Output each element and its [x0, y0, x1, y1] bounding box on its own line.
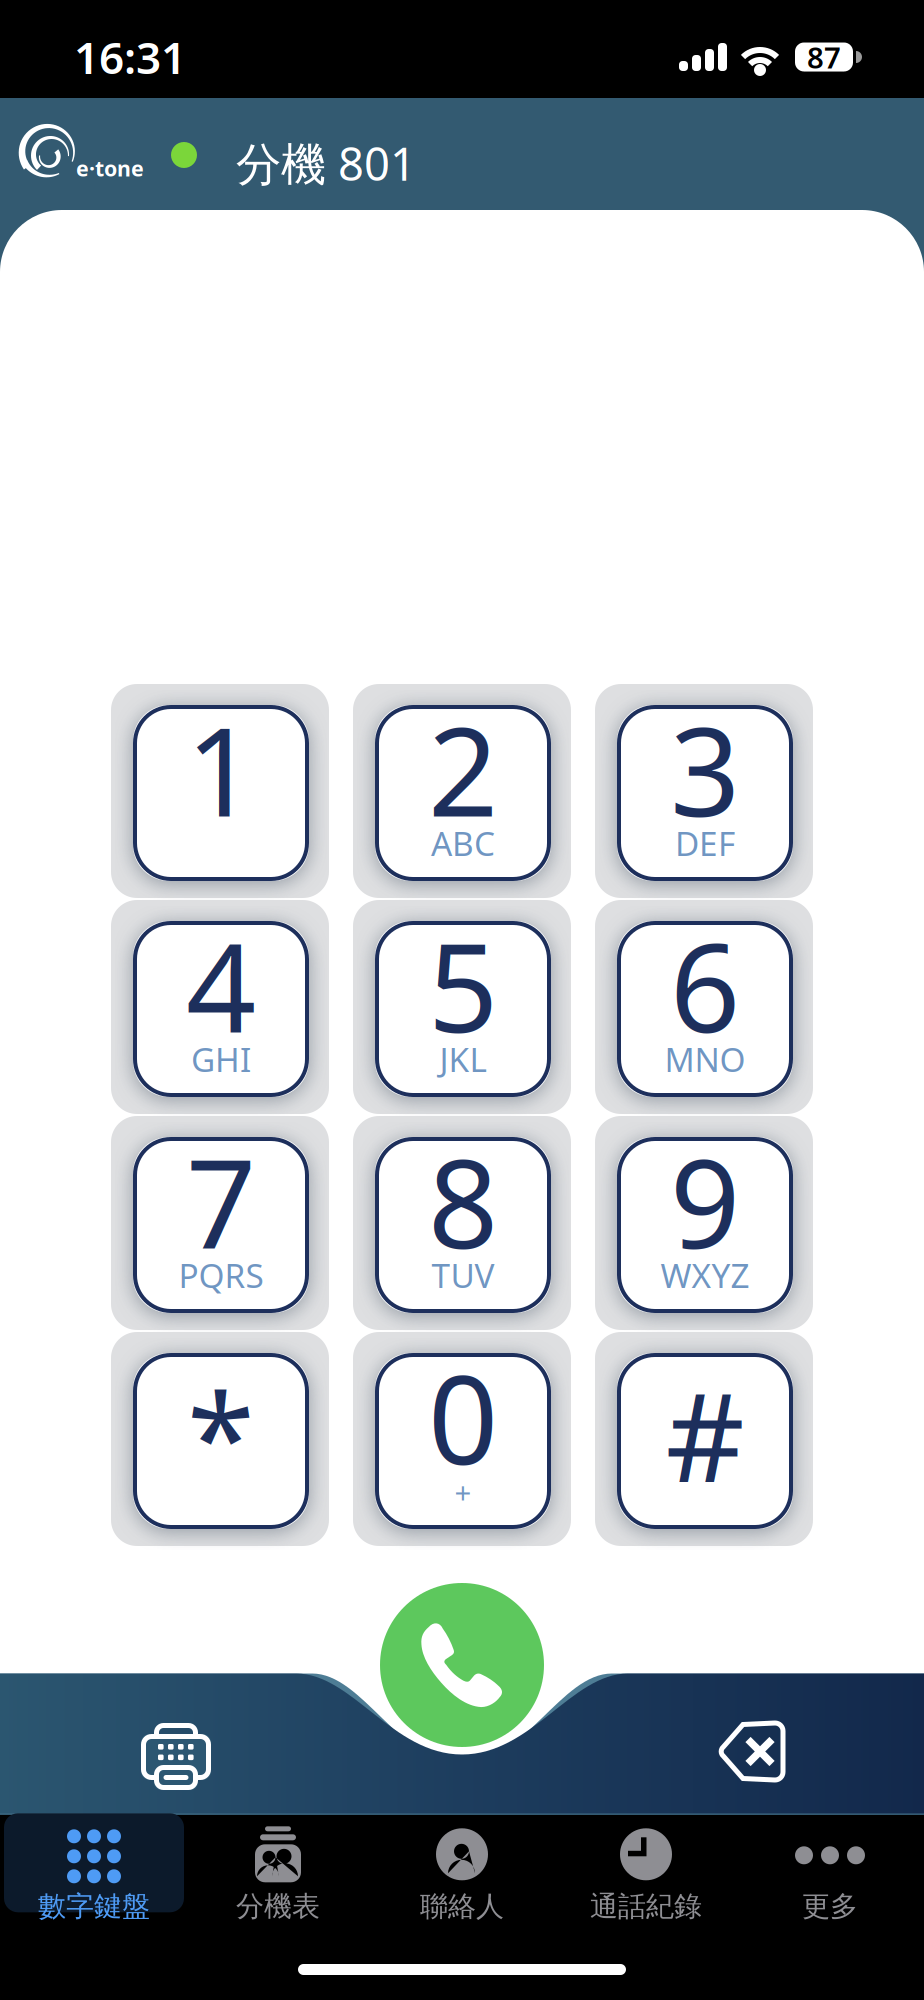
staticText: ABC [431, 821, 495, 865]
button[interactable]: 1 [111, 684, 329, 898]
staticText: MNO [664, 1037, 745, 1081]
staticText: JKL [439, 1037, 486, 1081]
staticText: + [454, 1472, 471, 1511]
button[interactable]: 數字鍵盤 [2, 1819, 186, 1918]
staticText: 9 [670, 1120, 740, 1282]
button[interactable]: 0 [353, 1332, 571, 1546]
button[interactable]: 2 [353, 684, 571, 898]
button[interactable]: 5 [353, 900, 571, 1114]
button[interactable]: 7 [111, 1116, 329, 1330]
staticText: 4 [186, 904, 256, 1066]
staticText: WXYZ [660, 1253, 749, 1297]
button[interactable]: 3 [595, 684, 813, 898]
button[interactable]: 4 [111, 900, 329, 1114]
staticText: 6 [670, 904, 740, 1066]
staticText: PQRS [178, 1253, 263, 1297]
staticText: GHI [191, 1037, 251, 1081]
staticText: 分機 801 [236, 133, 416, 193]
staticText: 87 [807, 37, 841, 76]
staticText: 3 [670, 688, 740, 850]
staticText: DEF [675, 821, 735, 865]
staticText: 2 [428, 688, 498, 850]
button[interactable]: 聯絡人 [370, 1819, 554, 1918]
button[interactable]: 6 [595, 900, 813, 1114]
staticText: 5 [428, 904, 498, 1066]
staticText: TUV [431, 1253, 494, 1297]
staticText: # [665, 1354, 744, 1516]
button[interactable]: 更多 [738, 1819, 922, 1918]
button[interactable]: 通話紀錄 [554, 1819, 738, 1918]
staticText: 聯絡人 [420, 1889, 504, 1924]
staticText: 通話紀錄 [590, 1889, 702, 1924]
button[interactable]: Delete [688, 1689, 812, 1813]
staticText: 數字鍵盤 [38, 1889, 150, 1924]
staticText: 8 [428, 1120, 498, 1282]
staticText: 分機表 [236, 1889, 320, 1924]
staticText: * [187, 1354, 255, 1516]
staticText: 7 [186, 1120, 256, 1282]
button[interactable]: * [111, 1332, 329, 1546]
staticText: 0 [428, 1336, 498, 1498]
staticText: e·tone [76, 154, 144, 182]
staticText: 更多 [802, 1889, 858, 1924]
button[interactable]: # [595, 1332, 813, 1546]
button[interactable]: 9 [595, 1116, 813, 1330]
staticText: 16:31 [74, 28, 186, 86]
button[interactable]: Keypad [114, 1694, 238, 1818]
staticText: 1 [186, 688, 256, 850]
button[interactable]: 8 [353, 1116, 571, 1330]
button[interactable]: 分機表 [186, 1819, 370, 1918]
button[interactable]: Call [380, 1583, 544, 1747]
